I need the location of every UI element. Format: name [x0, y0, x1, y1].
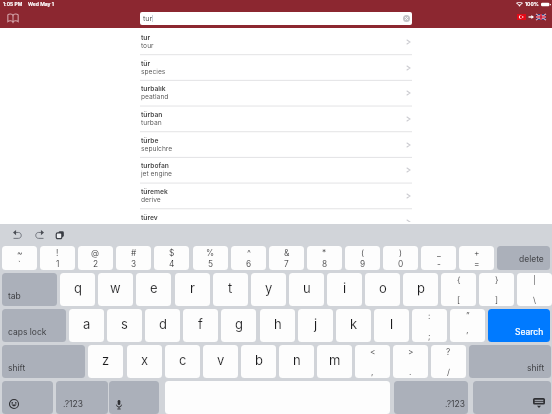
- button[interactable]: i: [327, 273, 362, 306]
- button[interactable]: s: [107, 309, 142, 342]
- staticText: 3: [131, 259, 137, 269]
- button[interactable]: @: [78, 246, 113, 270]
- button[interactable]: _: [421, 246, 456, 270]
- button[interactable]: w: [98, 273, 133, 306]
- staticText: (: [361, 248, 365, 258]
- button[interactable]: Emoji: [2, 381, 53, 414]
- staticText: %: [206, 248, 215, 258]
- button[interactable]: Redo: [32, 228, 46, 242]
- button[interactable]: ”: [450, 309, 485, 342]
- button[interactable]: ^: [231, 246, 266, 270]
- staticText: jet engine: [141, 170, 173, 178]
- staticText: 8: [322, 259, 328, 269]
- button[interactable]: tur: [140, 29, 412, 55]
- staticText: b: [255, 352, 263, 368]
- button[interactable]: .?123: [56, 381, 108, 414]
- button[interactable]: }: [479, 273, 514, 306]
- staticText: shift: [527, 363, 545, 373]
- button[interactable]: #: [116, 246, 151, 270]
- button[interactable]: u: [289, 273, 324, 306]
- button[interactable]: v: [203, 345, 238, 378]
- button[interactable]: Search field: [140, 12, 412, 25]
- button[interactable]: &: [269, 246, 304, 270]
- staticText: .?123: [63, 399, 83, 409]
- button[interactable]: z: [88, 345, 123, 378]
- button[interactable]: n: [279, 345, 314, 378]
- button[interactable]: r: [175, 273, 210, 306]
- button[interactable]: h: [260, 309, 295, 342]
- button[interactable]: .?123: [394, 381, 468, 414]
- button[interactable]: shift: [2, 345, 85, 378]
- button[interactable]: ?: [431, 345, 466, 378]
- button[interactable]: m: [317, 345, 352, 378]
- button[interactable]: p: [403, 273, 438, 306]
- staticText: $: [169, 248, 175, 258]
- button[interactable]: Dictionary: [7, 13, 19, 23]
- button[interactable]: e: [136, 273, 171, 306]
- button[interactable]: %: [193, 246, 228, 270]
- button[interactable]: k: [336, 309, 371, 342]
- staticText: j: [314, 316, 318, 332]
- button[interactable]: Turkish to English: [517, 14, 546, 20]
- button[interactable]: a: [69, 309, 104, 342]
- button[interactable]: türev: [140, 209, 412, 222]
- button[interactable]: o: [365, 273, 400, 306]
- staticText: tur: [141, 34, 151, 42]
- staticText: tür: [141, 60, 151, 68]
- button[interactable]: shift: [469, 345, 551, 378]
- staticText: z: [102, 352, 110, 368]
- button[interactable]: t: [213, 273, 248, 306]
- button[interactable]: turbofan: [140, 157, 412, 183]
- staticText: 6: [246, 259, 252, 269]
- button[interactable]: *: [307, 246, 342, 270]
- button[interactable]: <: [355, 345, 390, 378]
- button[interactable]: y: [251, 273, 286, 306]
- button[interactable]: l: [374, 309, 409, 342]
- button[interactable]: j: [298, 309, 333, 342]
- button[interactable]: turbalık: [140, 80, 412, 106]
- button[interactable]: d: [145, 309, 180, 342]
- button[interactable]: türemek: [140, 183, 412, 209]
- button[interactable]: c: [165, 345, 200, 378]
- staticText: i: [343, 280, 347, 296]
- button[interactable]: tür: [140, 55, 412, 81]
- staticText: =: [474, 259, 480, 269]
- button[interactable]: caps lock: [2, 309, 66, 342]
- staticText: Search: [515, 327, 544, 337]
- button[interactable]: türban: [140, 106, 412, 132]
- button[interactable]: türbe: [140, 132, 412, 158]
- staticText: ,: [371, 367, 374, 377]
- button[interactable]: ): [383, 246, 418, 270]
- button[interactable]: Paste: [53, 228, 67, 242]
- button[interactable]: :: [412, 309, 447, 342]
- button[interactable]: Dictate: [109, 381, 159, 414]
- staticText: #: [131, 248, 137, 258]
- staticText: -: [437, 259, 441, 269]
- button[interactable]: $: [154, 246, 189, 270]
- button[interactable]: !: [40, 246, 75, 270]
- button[interactable]: {: [441, 273, 476, 306]
- button[interactable]: delete: [497, 246, 550, 270]
- button[interactable]: b: [241, 345, 276, 378]
- button[interactable]: f: [183, 309, 218, 342]
- staticText: }: [495, 275, 499, 285]
- button[interactable]: ~: [2, 246, 37, 270]
- button[interactable]: >: [393, 345, 428, 378]
- staticText: tur: [143, 14, 153, 23]
- staticText: delete: [519, 254, 544, 264]
- button[interactable]: (: [345, 246, 380, 270]
- button[interactable]: Search: [488, 309, 550, 342]
- button[interactable]: Undo: [10, 228, 24, 242]
- staticText: !: [56, 248, 59, 258]
- button[interactable]: |: [517, 273, 552, 306]
- button[interactable]: tab: [2, 273, 57, 306]
- staticText: x: [141, 352, 149, 368]
- button[interactable]: g: [221, 309, 256, 342]
- button[interactable]: Hide keyboard: [473, 381, 551, 414]
- staticText: \: [533, 295, 536, 305]
- button[interactable]: x: [127, 345, 162, 378]
- button[interactable]: q: [60, 273, 95, 306]
- button[interactable]: +: [459, 246, 494, 270]
- staticText: türban: [141, 111, 163, 119]
